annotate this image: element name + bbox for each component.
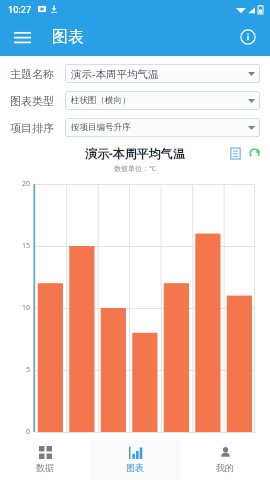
button[interactable]: 图表 <box>90 438 180 480</box>
staticText: 15 <box>21 241 30 251</box>
staticText: 按项目编号升序 <box>71 122 248 133</box>
staticText: 演示-本周平均气温 <box>71 67 248 81</box>
staticText: 20 <box>21 179 30 189</box>
button[interactable]: 我的 <box>180 438 270 480</box>
button[interactable]: 按项目编号升序 <box>65 118 260 137</box>
staticText: 图表类型 <box>10 94 54 108</box>
staticText: 我的 <box>216 462 234 473</box>
button[interactable]: Refresh <box>248 147 261 160</box>
staticText: 图表 <box>126 462 144 473</box>
button[interactable]: Menu <box>6 21 38 53</box>
button[interactable]: 柱状图（横向） <box>65 91 260 110</box>
staticText: 图表 <box>52 27 84 47</box>
button[interactable]: Data list <box>229 147 242 160</box>
staticText: 0 <box>25 427 30 437</box>
staticText: 数值单位：℃ <box>114 164 156 174</box>
staticText: 项目排序 <box>10 121 54 135</box>
staticText: 5 <box>25 365 30 375</box>
staticText: 演示-本周平均气温 <box>85 145 185 161</box>
button[interactable]: 数据 <box>0 438 90 480</box>
button[interactable]: Info <box>233 22 263 52</box>
staticText: 主题名称 <box>10 67 54 81</box>
staticText: 数据 <box>36 462 54 473</box>
staticText: 10:27 <box>8 3 32 15</box>
staticText: 柱状图（横向） <box>71 95 248 106</box>
staticText: 10 <box>21 303 30 313</box>
button[interactable]: 演示-本周平均气温 <box>65 64 260 83</box>
